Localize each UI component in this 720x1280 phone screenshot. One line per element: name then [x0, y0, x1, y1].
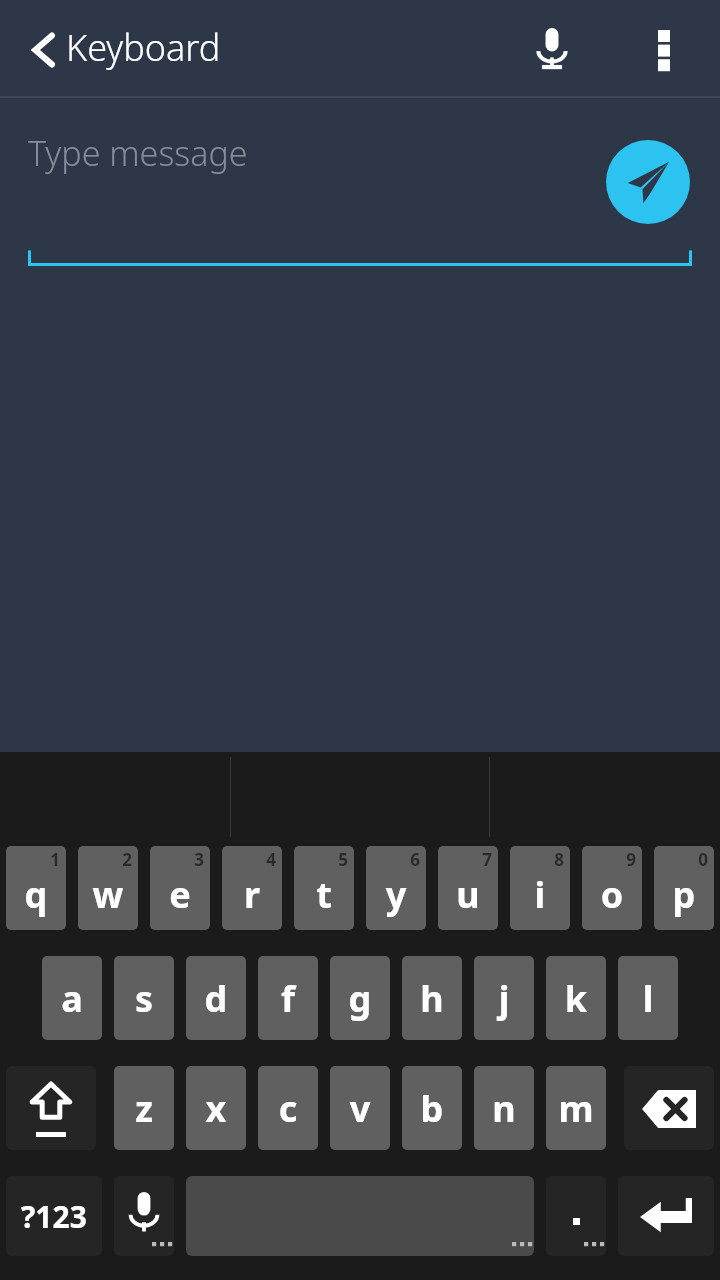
staticText: k	[546, 974, 606, 1024]
button[interactable]: Space	[186, 1176, 534, 1256]
button[interactable]: x	[186, 1066, 246, 1150]
button[interactable]: 1	[6, 846, 66, 930]
staticText: Keyboard	[66, 23, 221, 72]
staticText: u	[438, 870, 498, 920]
button[interactable]: Keyboard	[8, 10, 276, 88]
staticText: h	[402, 974, 462, 1024]
button[interactable]: Send	[606, 140, 690, 224]
staticText: i	[510, 870, 570, 920]
staticText: l	[618, 974, 678, 1024]
staticText: 7	[478, 848, 496, 870]
button[interactable]: Shift	[6, 1066, 96, 1150]
staticText: 8	[550, 848, 568, 870]
staticText: ?123	[21, 1196, 87, 1237]
button[interactable]: h	[402, 956, 462, 1040]
staticText: w	[78, 870, 138, 920]
button[interactable]: 6	[366, 846, 426, 930]
staticText: f	[258, 974, 318, 1024]
button[interactable]: Voice typing	[114, 1176, 174, 1256]
staticText: m	[546, 1084, 606, 1134]
staticText: 3	[190, 848, 208, 870]
staticText: z	[114, 1084, 174, 1134]
staticText: x	[186, 1084, 246, 1134]
button[interactable]: ?123	[6, 1176, 102, 1256]
staticText: j	[474, 974, 534, 1024]
staticText: 6	[406, 848, 424, 870]
button[interactable]: More options	[632, 14, 696, 82]
button[interactable]: 8	[510, 846, 570, 930]
button[interactable]: 7	[438, 846, 498, 930]
staticText: n	[474, 1084, 534, 1134]
button[interactable]: 3	[150, 846, 210, 930]
button[interactable]: c	[258, 1066, 318, 1150]
button[interactable]: 5	[294, 846, 354, 930]
staticText: 9	[622, 848, 640, 870]
button[interactable]: 9	[582, 846, 642, 930]
button[interactable]: 0	[654, 846, 714, 930]
button[interactable]: 2	[78, 846, 138, 930]
staticText: p	[654, 870, 714, 920]
button[interactable]	[546, 1176, 606, 1256]
button[interactable]: Type message	[28, 112, 588, 232]
staticText: a	[42, 974, 102, 1024]
staticText: v	[330, 1084, 390, 1134]
button[interactable]: Enter	[618, 1176, 714, 1256]
button[interactable]: b	[402, 1066, 462, 1150]
button[interactable]: a	[42, 956, 102, 1040]
button[interactable]: k	[546, 956, 606, 1040]
staticText: c	[258, 1084, 318, 1134]
staticText: d	[186, 974, 246, 1024]
staticText: 1	[46, 848, 64, 870]
staticText: 5	[334, 848, 352, 870]
button[interactable]: Voice input	[518, 14, 586, 82]
staticText: o	[582, 870, 642, 920]
button[interactable]: s	[114, 956, 174, 1040]
staticText: q	[6, 870, 66, 920]
button[interactable]: d	[186, 956, 246, 1040]
staticText: g	[330, 974, 390, 1024]
button[interactable]: m	[546, 1066, 606, 1150]
staticText: s	[114, 974, 174, 1024]
button[interactable]: z	[114, 1066, 174, 1150]
staticText: t	[294, 870, 354, 920]
button[interactable]: Backspace	[624, 1066, 714, 1150]
button[interactable]: g	[330, 956, 390, 1040]
button[interactable]: j	[474, 956, 534, 1040]
staticText: 4	[262, 848, 280, 870]
staticText: 2	[118, 848, 136, 870]
staticText: r	[222, 870, 282, 920]
staticText: b	[402, 1084, 462, 1134]
staticText: Type message	[28, 130, 248, 176]
button[interactable]: l	[618, 956, 678, 1040]
staticText: e	[150, 870, 210, 920]
button[interactable]: n	[474, 1066, 534, 1150]
button[interactable]: f	[258, 956, 318, 1040]
staticText: 0	[694, 848, 712, 870]
staticText: y	[366, 870, 426, 920]
button[interactable]: 4	[222, 846, 282, 930]
button[interactable]: v	[330, 1066, 390, 1150]
